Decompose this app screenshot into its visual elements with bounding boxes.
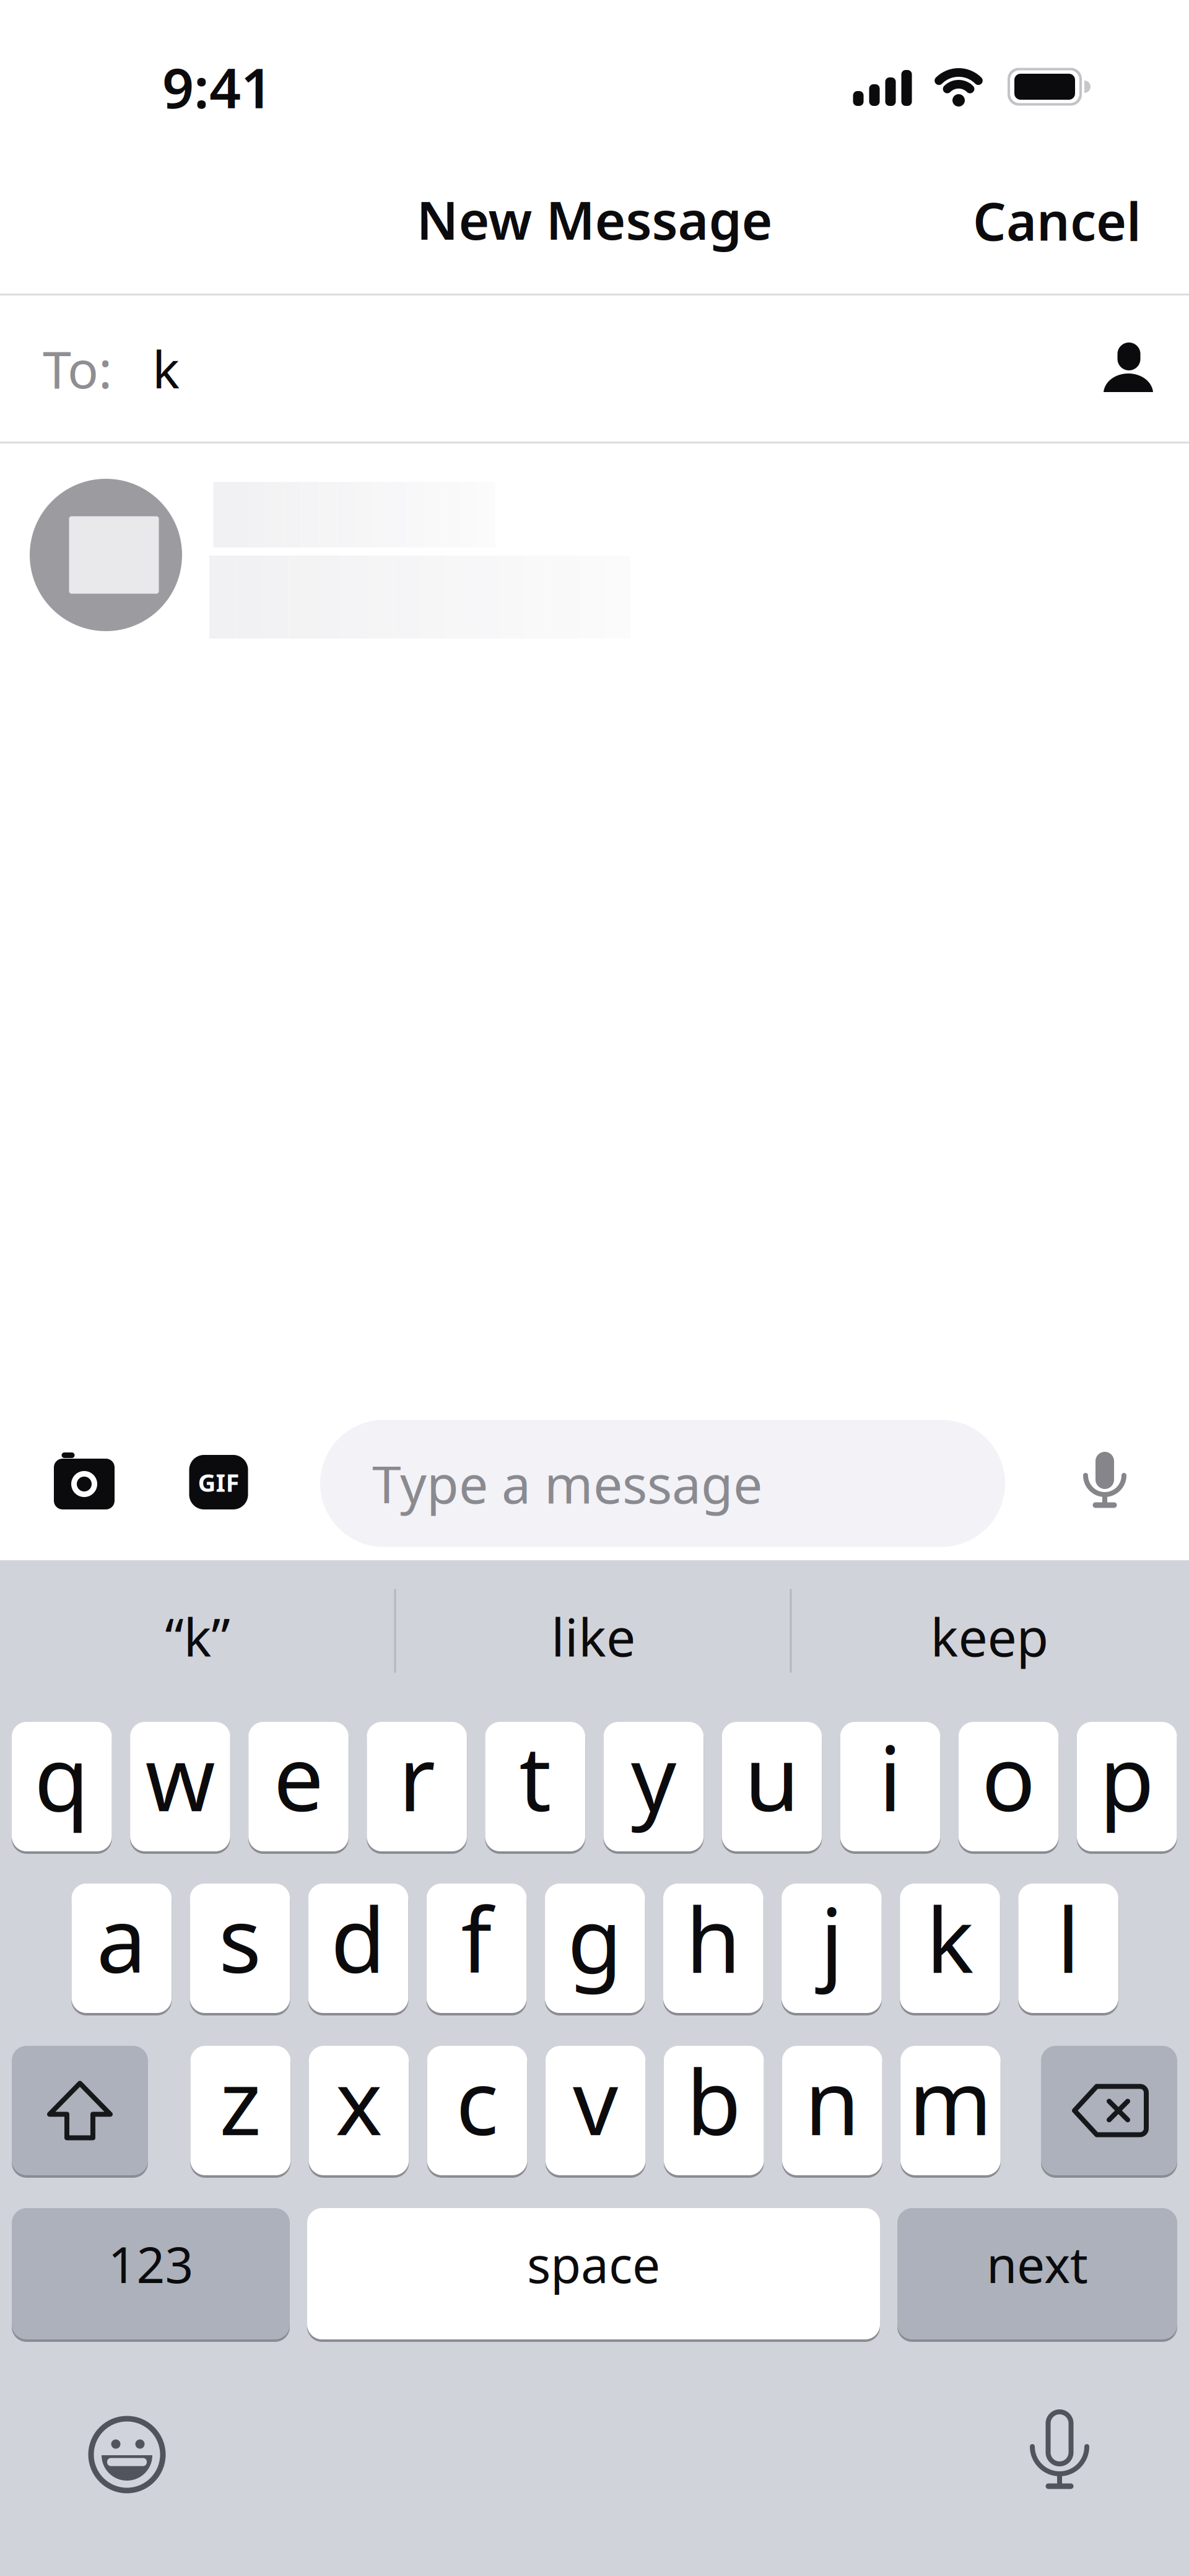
staticText: h	[686, 1879, 741, 1998]
staticText: 123	[108, 2231, 194, 2297]
staticText: c	[456, 2041, 499, 2160]
staticText: x	[335, 2041, 382, 2160]
button[interactable]: g	[545, 1884, 645, 2013]
staticText: z	[219, 2041, 262, 2160]
staticText: a	[96, 1879, 147, 1998]
staticText: g	[567, 1879, 622, 1998]
staticText: n	[805, 2041, 860, 2160]
staticText: e	[273, 1717, 324, 1836]
button[interactable]: h	[663, 1884, 763, 2013]
button[interactable]: j	[782, 1884, 882, 2013]
button[interactable]: “k”	[165, 1602, 230, 1671]
button[interactable]: keep	[930, 1602, 1049, 1671]
staticText: p	[1099, 1717, 1154, 1836]
button[interactable]: m	[900, 2046, 1001, 2175]
staticText: q	[34, 1717, 89, 1836]
button[interactable]	[87, 2414, 167, 2495]
staticText: “k”	[165, 1602, 230, 1671]
button[interactable]	[1104, 343, 1153, 393]
staticText: Cancel	[973, 186, 1141, 255]
button[interactable]	[0, 443, 1189, 644]
staticText: o	[982, 1717, 1035, 1836]
button[interactable]: o	[959, 1722, 1059, 1851]
button[interactable]	[1041, 2046, 1177, 2175]
button[interactable]: n	[782, 2046, 882, 2175]
staticText: j	[820, 1879, 843, 1998]
button[interactable]: a	[72, 1884, 172, 2013]
staticText: w	[145, 1717, 215, 1836]
button[interactable]: GIF	[189, 1455, 248, 1509]
button[interactable]: e	[248, 1722, 349, 1851]
button[interactable]: 123	[12, 2208, 290, 2339]
button[interactable]: Type a message	[320, 1420, 1005, 1547]
staticText: f	[461, 1879, 492, 1998]
staticText: Type a message	[372, 1449, 762, 1518]
button[interactable]: r	[367, 1722, 467, 1851]
button[interactable]: i	[840, 1722, 940, 1851]
button[interactable]: c	[427, 2046, 527, 2175]
staticText: r	[399, 1717, 435, 1836]
button[interactable]: w	[130, 1722, 230, 1851]
button[interactable]: like	[551, 1602, 635, 1671]
staticText: i	[879, 1717, 902, 1836]
staticText: To:	[43, 335, 112, 403]
staticText: s	[219, 1879, 261, 1998]
button[interactable]: space	[307, 2208, 880, 2339]
staticText: l	[1057, 1879, 1080, 1998]
button[interactable]: y	[603, 1722, 704, 1851]
staticText: v	[573, 2041, 618, 2160]
button[interactable]: x	[309, 2046, 409, 2175]
button[interactable]: b	[664, 2046, 764, 2175]
button[interactable]: d	[308, 1884, 408, 2013]
button[interactable]: z	[190, 2046, 290, 2175]
button[interactable]	[12, 2046, 148, 2175]
button[interactable]: u	[722, 1722, 822, 1851]
button[interactable]	[1030, 2409, 1089, 2496]
button[interactable]: next	[897, 2208, 1177, 2339]
button[interactable]	[1082, 1451, 1127, 1513]
staticText: d	[331, 1879, 386, 1998]
staticText: next	[986, 2231, 1088, 2297]
button[interactable]: f	[427, 1884, 527, 2013]
staticText: m	[909, 2041, 992, 2160]
staticText: keep	[930, 1602, 1049, 1671]
staticText: like	[551, 1602, 635, 1671]
button[interactable]: l	[1018, 1884, 1118, 2013]
staticText: b	[686, 2041, 741, 2160]
staticText: space	[527, 2231, 660, 2297]
staticText: y	[631, 1717, 676, 1836]
button[interactable]: Cancel	[881, 174, 1141, 267]
button[interactable]: t	[485, 1722, 585, 1851]
button[interactable]: s	[190, 1884, 290, 2013]
button[interactable]: p	[1077, 1722, 1177, 1851]
staticText: GIF	[198, 1466, 239, 1499]
button[interactable]: v	[545, 2046, 646, 2175]
staticText: t	[519, 1717, 551, 1836]
staticText: k	[152, 335, 180, 403]
staticText: New Message	[416, 184, 773, 254]
button[interactable]: k	[900, 1884, 1000, 2013]
staticText: 9:41	[162, 50, 272, 123]
button[interactable]	[54, 1451, 116, 1513]
staticText: k	[926, 1879, 974, 1998]
button[interactable]: q	[12, 1722, 112, 1851]
staticText: u	[744, 1717, 799, 1836]
